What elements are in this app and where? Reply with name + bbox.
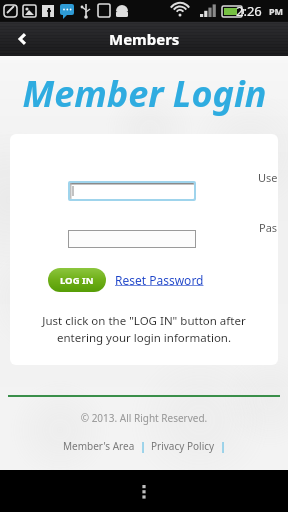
- button[interactable]: Back: [6, 24, 36, 54]
- staticText: Use: [258, 170, 278, 185]
- staticText: |: [215, 439, 226, 453]
- staticText: 2:26: [236, 2, 262, 20]
- staticText: Just click on the "LOG IN" button after …: [18, 313, 270, 345]
- button[interactable]: Reset Password: [115, 272, 204, 288]
- staticText: Pas: [259, 220, 278, 235]
- staticText: LOG IN: [60, 274, 94, 287]
- staticText: |: [135, 439, 151, 453]
- staticText: © 2013. All Right Reserved.: [0, 411, 288, 425]
- staticText: Member Login: [22, 69, 267, 118]
- button[interactable]: Privacy Policy: [151, 439, 215, 453]
- staticText: PM: [269, 5, 284, 17]
- button[interactable]: Back: [0, 22, 288, 56]
- staticText: Members: [109, 29, 180, 49]
- button[interactable]: LOG IN: [48, 268, 106, 292]
- button[interactable]: Member's Area: [63, 439, 135, 453]
- button[interactable]: [70, 183, 194, 199]
- button[interactable]: More options: [126, 473, 162, 509]
